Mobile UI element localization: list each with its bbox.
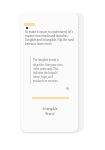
staticText: Intangible Brand (39, 107, 61, 116)
button[interactable]: To make it easier to understand, let's e… (21, 13, 78, 132)
staticText: The tangible brand is objective. Everyon… (33, 58, 63, 82)
staticText: To make it easier to understand, let's e… (25, 30, 74, 46)
other: Flip card (66, 87, 69, 90)
